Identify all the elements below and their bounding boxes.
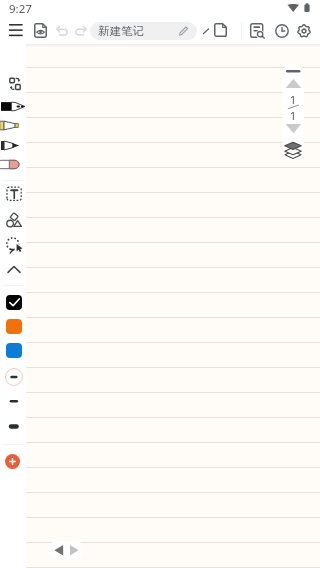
button[interactable]: Pan xyxy=(48,541,84,558)
button[interactable]: Settings xyxy=(294,21,313,40)
button[interactable]: Orange xyxy=(6,319,22,334)
button[interactable]: Shapes xyxy=(1,210,25,233)
button[interactable]: Layers xyxy=(284,139,302,157)
button[interactable]: Pencil xyxy=(1,134,25,157)
button[interactable]: Blue xyxy=(6,343,22,358)
button[interactable]: History xyxy=(272,21,291,40)
button[interactable]: Highlighter xyxy=(1,114,25,137)
button[interactable]: Stroke thick xyxy=(5,419,23,434)
button[interactable]: Add colour xyxy=(5,454,20,469)
button[interactable]: Page xyxy=(211,21,229,39)
button[interactable]: Stroke thin xyxy=(5,394,23,408)
button[interactable]: Black xyxy=(6,295,22,310)
button[interactable]: Eraser xyxy=(1,153,25,176)
button[interactable]: Preview xyxy=(32,21,49,40)
button[interactable]: Next page xyxy=(285,123,302,134)
button[interactable]: 新建笔记 xyxy=(90,22,197,40)
button[interactable]: Fountain pen xyxy=(1,95,25,118)
button[interactable]: Undo xyxy=(54,22,70,38)
button[interactable]: Stroke medium xyxy=(5,368,23,386)
button[interactable]: Collapse xyxy=(1,255,25,278)
button[interactable]: Lasso select xyxy=(1,231,25,254)
button[interactable]: Text xyxy=(1,184,25,207)
staticText: 新建笔记 xyxy=(98,24,144,38)
staticText: 1 xyxy=(290,109,297,123)
button[interactable]: Menu xyxy=(5,22,27,38)
staticText: 1 xyxy=(290,93,297,107)
staticText: 9:27 xyxy=(9,1,32,17)
button[interactable]: Transform xyxy=(1,72,25,95)
button[interactable]: Redo xyxy=(72,22,88,38)
button[interactable]: Previous page xyxy=(285,78,302,89)
button[interactable]: Search notes xyxy=(248,21,267,40)
